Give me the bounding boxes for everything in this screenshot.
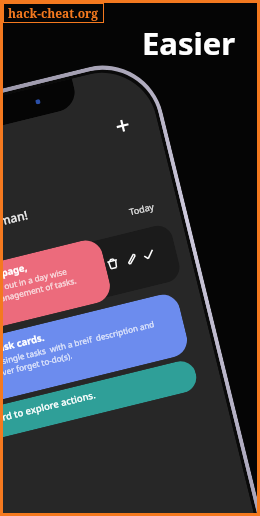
- staticText: These are task cards.: [0, 331, 46, 367]
- button[interactable]: Add task: [104, 108, 141, 144]
- staticText: Swipe card to explore actions.: [0, 388, 97, 433]
- button[interactable]: Delete: [102, 253, 122, 273]
- button[interactable]: [0, 358, 200, 455]
- staticText: Today: [128, 200, 155, 217]
- staticText: hack-cheat.org: [8, 5, 99, 21]
- button[interactable]: [0, 237, 114, 350]
- staticText: manner for easy management of tasks.: [0, 274, 78, 321]
- button[interactable]: Done: [138, 245, 158, 264]
- button[interactable]: Edit: [121, 249, 140, 268]
- button[interactable]: [0, 291, 191, 419]
- staticText: reminder to never forget to-do(s).: [0, 349, 74, 391]
- staticText: Hi Rahman!: [0, 206, 30, 238]
- staticText: They represent single tasks with a breif…: [0, 318, 156, 380]
- staticText: This is the task page,: [0, 261, 29, 297]
- staticText: Where tasks are laid out in a day wise: [0, 265, 68, 310]
- staticText: Easier: [142, 22, 236, 64]
